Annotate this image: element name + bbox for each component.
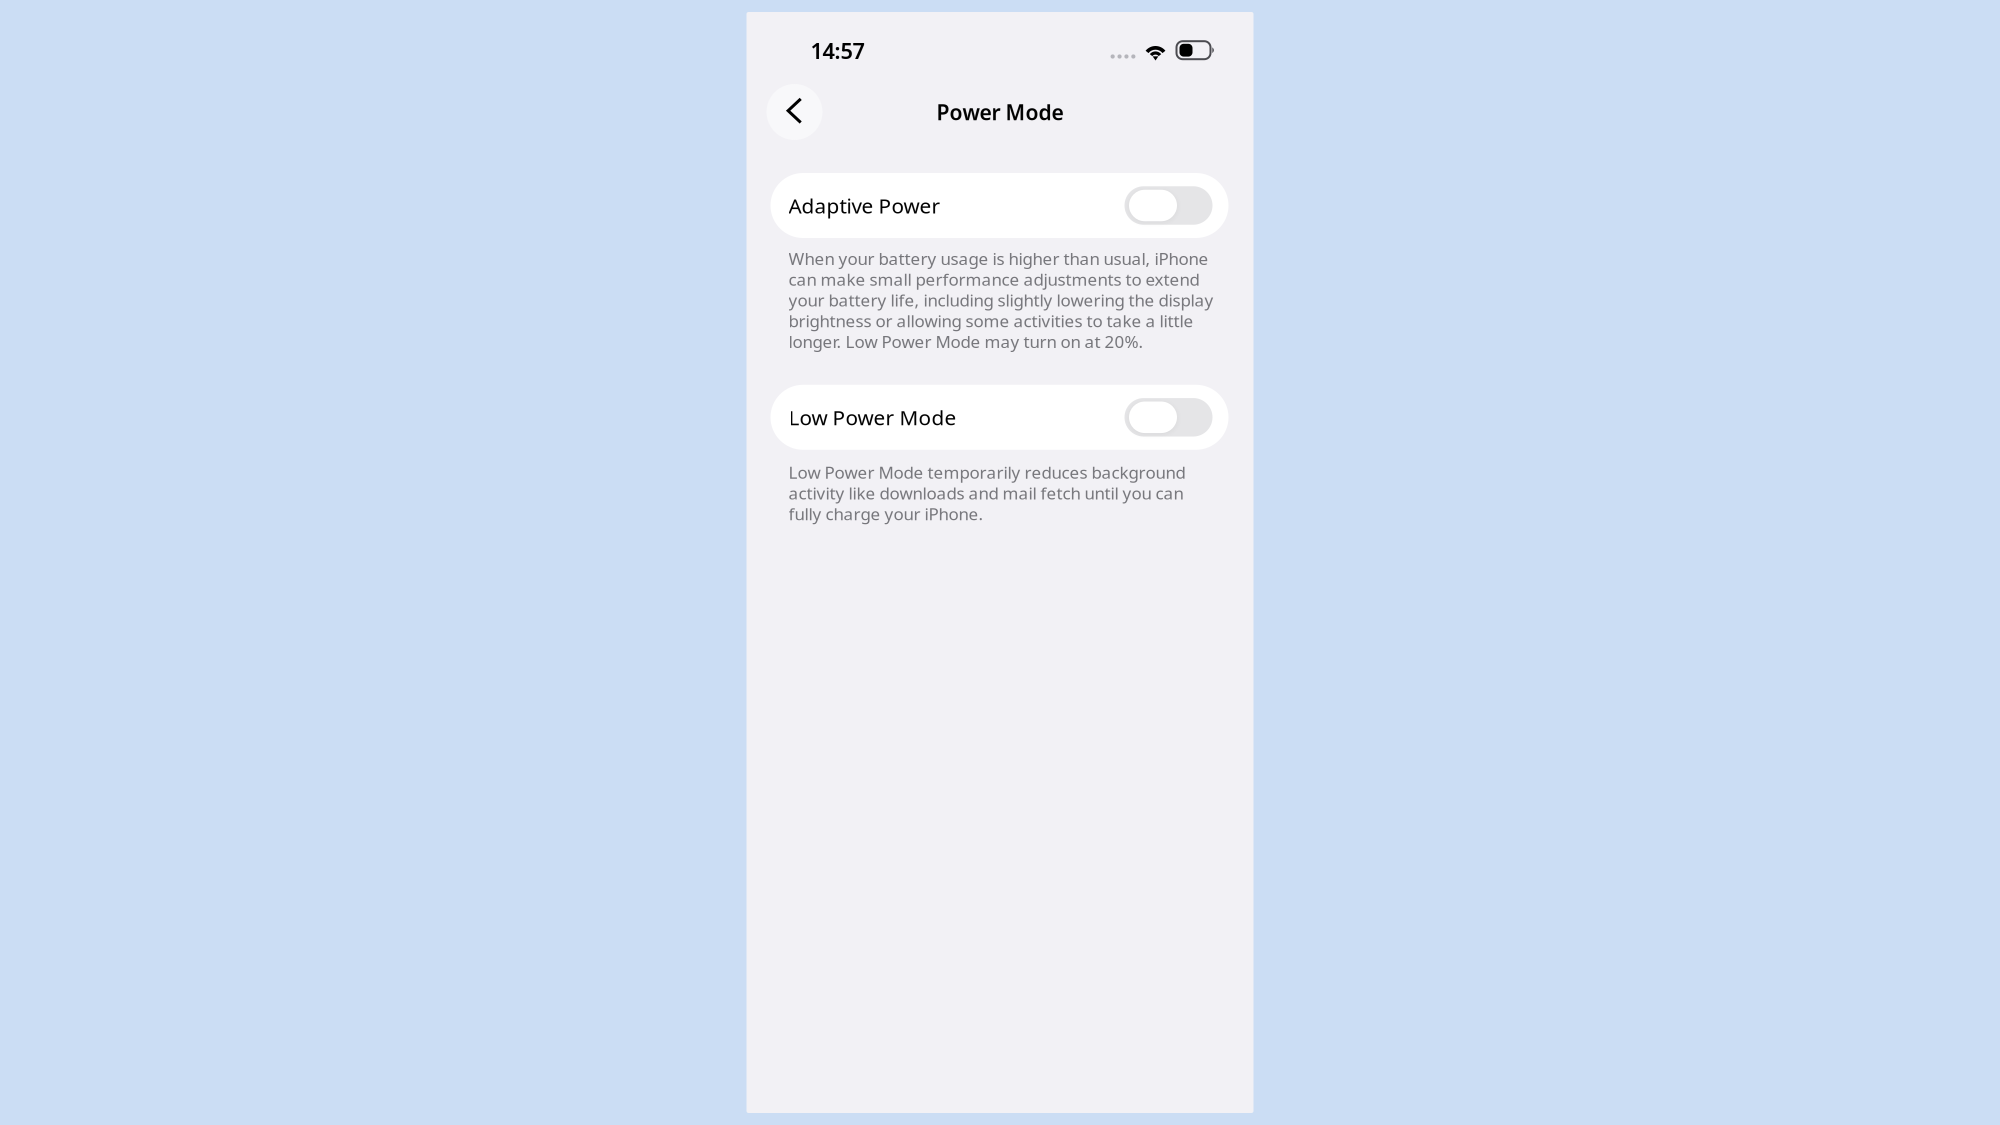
button[interactable]: Adaptive Power, off: [1124, 186, 1212, 225]
staticText: Power Mode: [936, 98, 1063, 126]
staticText: When your battery usage is higher than u…: [788, 248, 1213, 352]
button[interactable]: Back: [766, 84, 822, 140]
button[interactable]: Low Power Mode, off: [1124, 398, 1212, 436]
staticText: 14:57: [810, 36, 864, 65]
staticText: Low Power Mode: [788, 403, 956, 431]
staticText: Low Power Mode temporarily reduces backg…: [788, 462, 1185, 524]
button[interactable]: Low Power Mode: [770, 385, 1228, 450]
button[interactable]: Adaptive Power: [770, 173, 1228, 238]
staticText: Adaptive Power: [788, 191, 940, 219]
